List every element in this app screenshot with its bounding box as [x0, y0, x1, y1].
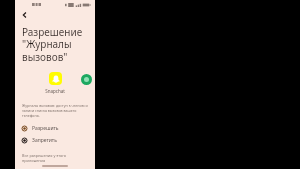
button[interactable]: Запретить: [15, 134, 95, 146]
button[interactable]: Все разрешения у этого приложения: [22, 153, 88, 163]
staticText: Все разрешения у этого приложения: [22, 153, 88, 163]
staticText: Разрешение "Журналы вызовов": [22, 25, 83, 64]
staticText: Разрешить: [32, 125, 59, 132]
button[interactable]: Назад: [19, 9, 30, 20]
staticText: Snapchat: [45, 88, 65, 94]
staticText: Журналы вызовов: доступ к чтению и запис…: [22, 103, 88, 118]
button[interactable]: Разрешить: [15, 122, 95, 134]
staticText: Запретить: [32, 137, 57, 144]
other: Pointer: [81, 74, 92, 85]
